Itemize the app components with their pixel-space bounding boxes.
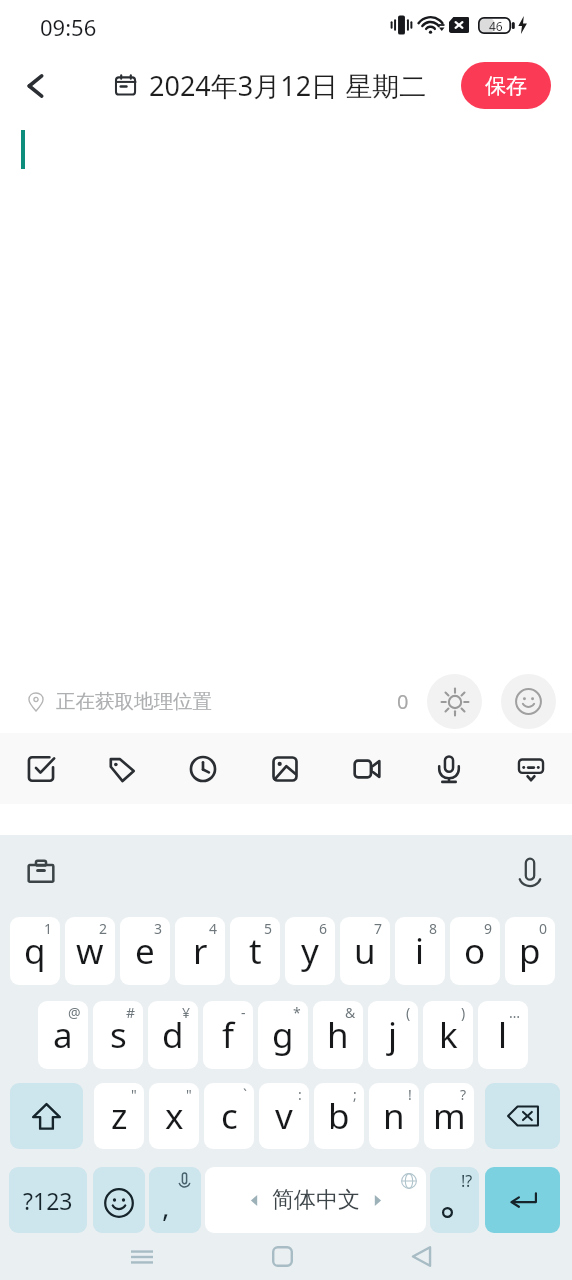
staticText: z <box>111 1092 128 1140</box>
button[interactable]: Home <box>252 1233 312 1280</box>
staticText: 8 <box>429 919 438 938</box>
button[interactable]: r <box>175 917 225 985</box>
staticText: ) <box>461 1003 466 1022</box>
button[interactable]: q <box>10 917 60 985</box>
button[interactable]: s <box>93 1001 143 1069</box>
button[interactable]: x <box>149 1083 199 1149</box>
button[interactable]: g <box>258 1001 308 1069</box>
staticText: … <box>509 1003 521 1022</box>
button[interactable]: Backspace <box>485 1083 560 1149</box>
staticText: w <box>76 927 104 975</box>
button[interactable]: Back <box>391 1233 451 1280</box>
button[interactable]: Comma, voice input <box>149 1167 201 1233</box>
button[interactable]: Reminder <box>162 733 244 804</box>
button[interactable]: Recents <box>112 1233 172 1280</box>
staticText: h <box>327 1011 349 1059</box>
staticText: j <box>388 1011 398 1059</box>
button[interactable]: y <box>285 917 335 985</box>
button[interactable]: Clipboard <box>17 847 65 895</box>
staticText: 简体中文 <box>272 1186 360 1214</box>
staticText: g <box>272 1011 294 1059</box>
button[interactable]: Theme <box>427 674 482 729</box>
staticText: , <box>162 1187 170 1225</box>
button[interactable]: d <box>148 1001 198 1069</box>
button[interactable]: Enter <box>485 1167 560 1233</box>
button[interactable]: o <box>450 917 500 985</box>
button[interactable]: a <box>38 1001 88 1069</box>
button[interactable]: Video <box>326 733 408 804</box>
staticText: : <box>298 1085 302 1104</box>
staticText: ( <box>406 1003 411 1022</box>
button[interactable]: z <box>94 1083 144 1149</box>
staticText: " <box>186 1085 192 1104</box>
button[interactable]: e <box>120 917 170 985</box>
staticText: 0 <box>397 688 409 715</box>
staticText: 2 <box>99 919 108 938</box>
button[interactable]: t <box>230 917 280 985</box>
staticText: n <box>383 1092 405 1140</box>
staticText: ; <box>353 1085 357 1104</box>
button[interactable]: b <box>314 1083 364 1149</box>
button[interactable]: 正在获取地理位置 <box>28 689 212 714</box>
staticText: 5 <box>264 919 273 938</box>
button[interactable]: Voice input <box>506 847 554 895</box>
button[interactable]: k <box>423 1001 473 1069</box>
button[interactable]: Shift <box>10 1083 83 1149</box>
staticText: & <box>345 1003 356 1022</box>
staticText: s <box>110 1011 127 1059</box>
staticText: 6 <box>319 919 328 938</box>
staticText: m <box>433 1092 466 1140</box>
button[interactable]: f <box>203 1001 253 1069</box>
staticText: 正在获取地理位置 <box>56 689 212 714</box>
staticText: ?123 <box>23 1185 73 1216</box>
staticText: a <box>53 1011 73 1059</box>
button[interactable]: Voice <box>408 733 490 804</box>
button[interactable]: i <box>395 917 445 985</box>
staticText: 9 <box>484 919 493 938</box>
staticText: t <box>249 927 262 975</box>
staticText: u <box>354 927 376 975</box>
button[interactable]: Emoji <box>501 674 556 729</box>
staticText: o <box>464 927 486 975</box>
button[interactable]: Tag <box>81 733 162 804</box>
staticText: 0 <box>539 919 548 938</box>
staticText: p <box>519 927 541 975</box>
button[interactable]: Back <box>13 64 57 108</box>
button[interactable]: ?123 <box>9 1167 87 1233</box>
button[interactable]: v <box>259 1083 309 1149</box>
staticText: d <box>162 1011 184 1059</box>
button[interactable]: 保存 <box>461 62 551 109</box>
staticText: 2024年3月12日 星期二 <box>149 67 427 104</box>
button[interactable]: n <box>369 1083 419 1149</box>
button[interactable]: Hide keyboard <box>490 733 572 804</box>
button[interactable]: h <box>313 1001 363 1069</box>
button[interactable]: l <box>478 1001 528 1069</box>
button[interactable]: 简体中文 <box>205 1167 426 1233</box>
button[interactable]: Emoji <box>93 1167 145 1233</box>
staticText: i <box>415 927 425 975</box>
button[interactable]: p <box>505 917 555 985</box>
button[interactable]: 2024年3月12日 星期二 <box>114 67 427 104</box>
staticText: 7 <box>374 919 383 938</box>
button[interactable]: w <box>65 917 115 985</box>
staticText: " <box>131 1085 137 1104</box>
button[interactable]: Checklist <box>0 733 81 804</box>
staticText: k <box>439 1011 458 1059</box>
button[interactable]: !? <box>430 1167 479 1233</box>
button[interactable]: c <box>204 1083 254 1149</box>
staticText: r <box>193 927 208 975</box>
staticText: l <box>498 1011 508 1059</box>
staticText: ` <box>243 1085 247 1104</box>
staticText: * <box>293 1003 301 1022</box>
staticText: 保存 <box>485 73 527 99</box>
staticText: 46 <box>489 18 503 34</box>
staticText: # <box>126 1003 136 1022</box>
button[interactable]: u <box>340 917 390 985</box>
button[interactable]: Image <box>244 733 326 804</box>
button[interactable]: m <box>424 1083 474 1149</box>
staticText: v <box>275 1092 293 1140</box>
staticText: ! <box>408 1085 412 1104</box>
staticText: y <box>301 927 319 975</box>
button[interactable]: j <box>368 1001 418 1069</box>
staticText: !? <box>461 1170 473 1192</box>
